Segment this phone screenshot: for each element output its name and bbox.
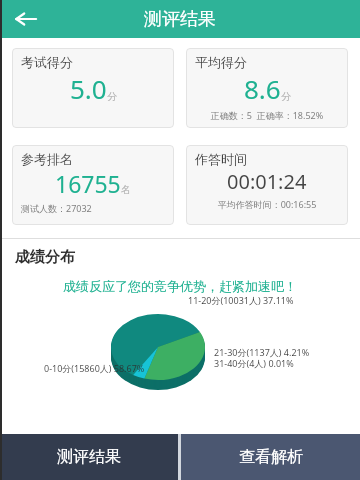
staticText: 21-30分(1137人) 4.21% — [214, 346, 310, 358]
staticText: 分 — [281, 90, 291, 103]
button[interactable]: 测评结果 — [0, 434, 178, 480]
staticText: 31-40分(4人) 0.01% — [214, 357, 294, 369]
staticText: 11-20分(10031人) 37.11% — [188, 294, 294, 306]
staticText: 8.6 — [244, 71, 281, 106]
staticText: 00:01:24 — [227, 168, 307, 195]
button[interactable]: 平均得分 — [186, 48, 348, 128]
staticText: 测试人数：27032 — [21, 202, 165, 214]
button[interactable]: 参考排名 — [12, 145, 174, 225]
staticText: 0-10分(15860人) 58.67% — [44, 362, 145, 374]
staticText: 平均得分 — [195, 54, 247, 70]
staticText: 成绩反应了您的竞争优势，赶紧加速吧！ — [0, 278, 360, 294]
staticText: 参考排名 — [21, 151, 73, 167]
button[interactable]: Back — [8, 1, 44, 37]
staticText: 分 — [107, 90, 117, 103]
staticText: 测评结果 — [57, 447, 121, 467]
staticText: 测评结果 — [144, 8, 216, 31]
staticText: 平均作答时间：00:16:55 — [195, 198, 339, 210]
staticText: 查看解析 — [239, 447, 303, 467]
button[interactable]: 作答时间 — [186, 145, 348, 225]
staticText: 16755 — [55, 168, 121, 199]
button[interactable]: 查看解析 — [181, 434, 360, 480]
staticText: 名 — [121, 183, 131, 196]
staticText: 作答时间 — [195, 151, 247, 167]
staticText: 正确数：5 正确率：18.52% — [195, 109, 339, 121]
button[interactable]: 考试得分 — [12, 48, 174, 128]
staticText: 5.0 — [70, 71, 107, 106]
staticText: 成绩分布 — [15, 248, 75, 267]
staticText: 考试得分 — [21, 54, 73, 70]
